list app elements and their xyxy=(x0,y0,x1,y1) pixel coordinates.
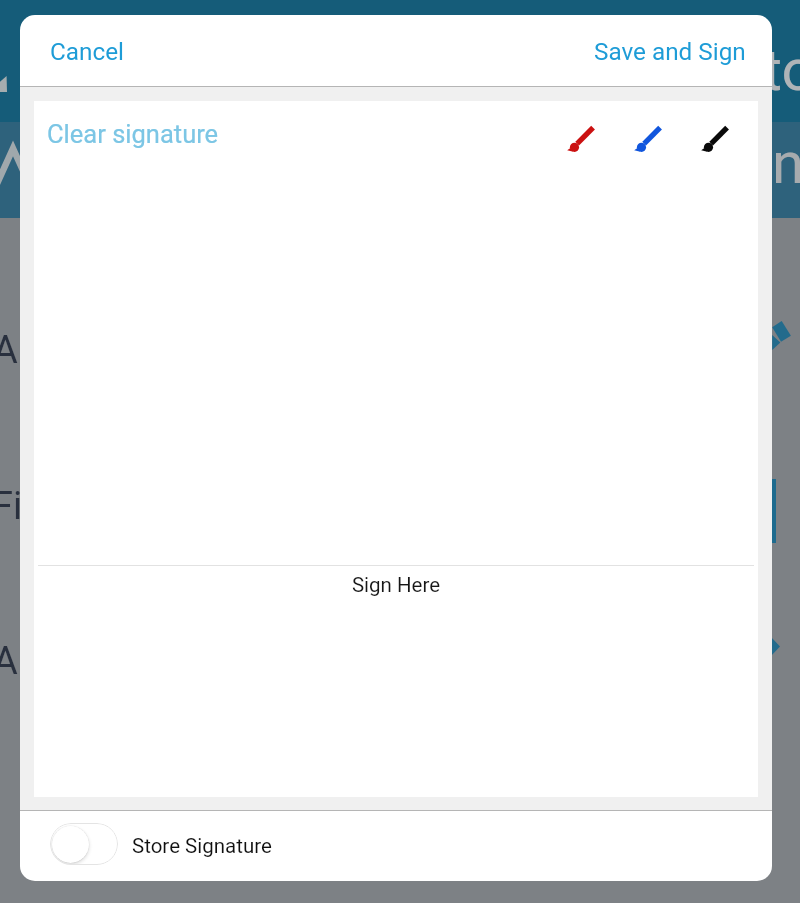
button[interactable]: Clear signature xyxy=(34,101,232,159)
staticText: Cancel xyxy=(50,37,124,65)
button[interactable]: Cancel xyxy=(20,25,148,77)
button[interactable]: Store signature toggle xyxy=(20,811,772,881)
button[interactable]: Blue brush xyxy=(632,125,660,153)
staticText: Fi xyxy=(0,484,23,529)
staticText: to xyxy=(763,36,800,104)
staticText: A xyxy=(0,639,18,684)
staticText: Store Signature xyxy=(132,834,272,858)
button[interactable]: Store signature toggle xyxy=(50,823,118,865)
staticText: n xyxy=(772,129,800,197)
button[interactable]: Save and Sign xyxy=(570,25,772,77)
staticText: Sign Here xyxy=(34,573,758,597)
staticText: Save and Sign xyxy=(594,37,746,65)
staticText: A xyxy=(0,328,18,373)
staticText: Clear signature xyxy=(47,119,219,149)
button[interactable]: Black brush xyxy=(699,125,727,153)
button[interactable]: Red brush xyxy=(565,125,593,153)
